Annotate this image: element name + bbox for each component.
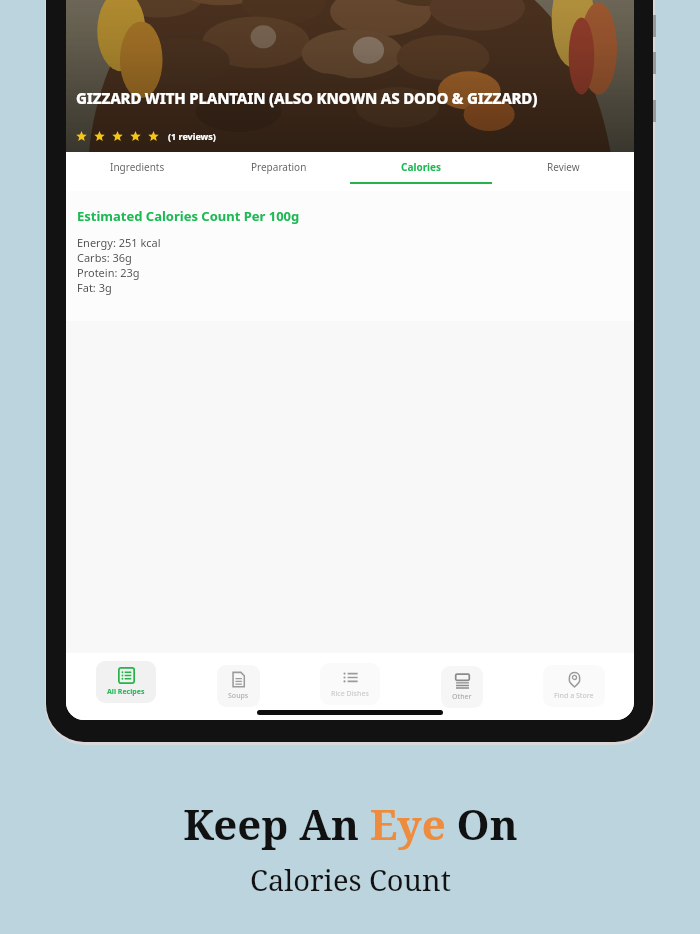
- staticText: Carbs: 36g: [77, 250, 132, 265]
- staticText: Fat: 3g: [77, 280, 112, 295]
- staticText: Calories Count: [250, 860, 451, 899]
- staticText: (1 reviews): [168, 130, 216, 142]
- staticText: Preparation: [251, 160, 307, 174]
- staticText: Ingredients: [110, 160, 165, 174]
- staticText: GIZZARD WITH PLANTAIN (ALSO KNOWN AS DOD…: [76, 88, 538, 108]
- staticText: Find a Store: [554, 691, 594, 701]
- button[interactable]: Find a Store: [543, 665, 605, 707]
- button[interactable]: Rice Dishes: [320, 663, 380, 705]
- staticText: Soups: [228, 691, 249, 701]
- staticText: Calories: [401, 160, 442, 174]
- staticText: Review: [547, 160, 580, 174]
- staticText: Rice Dishes: [331, 689, 369, 699]
- button[interactable]: Preparation: [208, 152, 350, 191]
- button[interactable]: Ingredients: [66, 152, 208, 191]
- button[interactable]: Soups: [217, 665, 260, 707]
- staticText: Other: [452, 692, 472, 702]
- staticText: Keep An Eye On: [183, 795, 518, 852]
- staticText: Estimated Calories Count Per 100g: [77, 207, 300, 225]
- button[interactable]: Calories: [350, 152, 492, 191]
- button[interactable]: Review: [492, 152, 634, 191]
- staticText: Protein: 23g: [77, 265, 140, 280]
- staticText: All Recipes: [107, 687, 145, 697]
- button[interactable]: Other: [441, 666, 483, 708]
- button[interactable]: All Recipes: [96, 661, 156, 703]
- staticText: Energy: 251 kcal: [77, 235, 161, 250]
